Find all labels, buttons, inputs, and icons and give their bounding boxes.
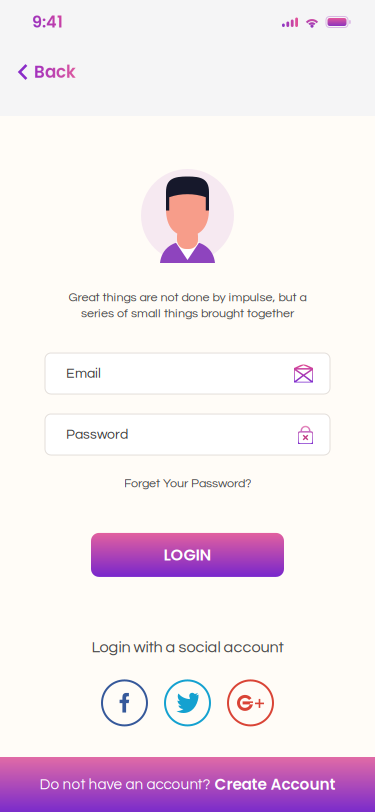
button[interactable]: Google Plus	[226, 679, 274, 727]
staticText: Great things are not done by impulse, bu…	[68, 291, 306, 304]
staticText: series of small things brought together	[81, 307, 294, 320]
button[interactable]: Email	[45, 353, 330, 394]
button[interactable]: LOGIN	[91, 533, 284, 577]
button[interactable]: Forget Your Password?	[114, 471, 261, 496]
button[interactable]: Password	[45, 414, 330, 455]
staticText: Password	[66, 427, 128, 442]
staticText: Login with a social account	[91, 639, 283, 656]
staticText: 9:41	[32, 11, 63, 33]
staticText: Back	[34, 60, 76, 84]
button[interactable]: Back	[0, 50, 90, 94]
staticText: LOGIN	[163, 544, 211, 566]
staticText: Email	[66, 366, 101, 381]
button[interactable]: Twitter	[163, 679, 211, 727]
staticText: Create Account	[214, 774, 335, 795]
staticText: Do not have an account?	[39, 777, 210, 792]
button[interactable]: Facebook	[100, 679, 148, 727]
button[interactable]: Do not have an account?	[0, 757, 375, 812]
staticText: Forget Your Password?	[124, 477, 251, 490]
